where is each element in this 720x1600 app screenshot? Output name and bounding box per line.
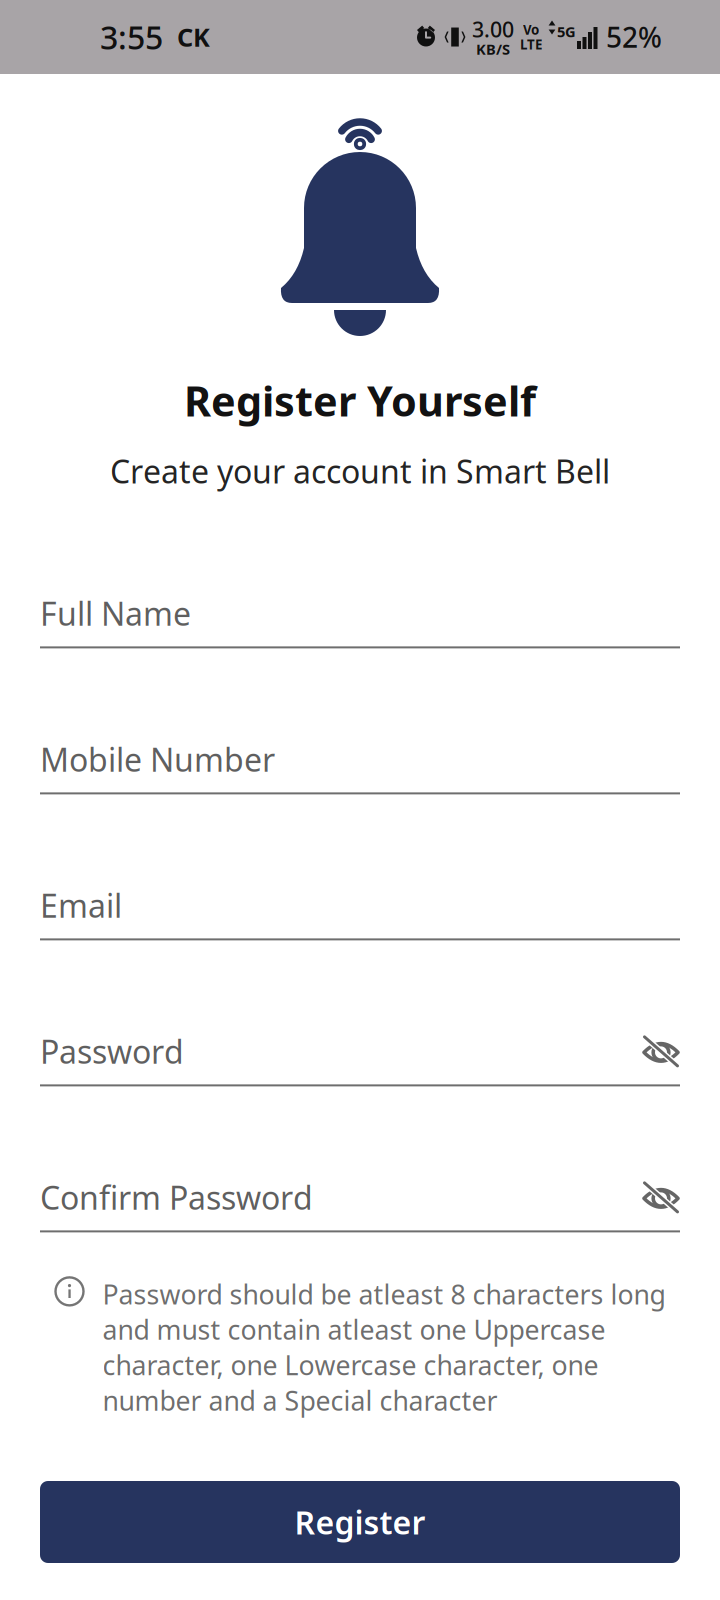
staticText: Email [40, 884, 122, 927]
staticText: 3:55 [100, 16, 163, 58]
staticText: Mobile Number [40, 738, 275, 781]
staticText: Password should be atleast 8 characters … [102, 1276, 665, 1418]
staticText: Full Name [40, 592, 191, 635]
button[interactable]: Show Password [634, 1035, 680, 1067]
staticText: 3.00 [472, 15, 514, 43]
staticText: LTE [520, 35, 542, 53]
staticText: Register [294, 1501, 425, 1543]
staticText: 5G [557, 22, 576, 41]
staticText: Confirm Password [40, 1176, 313, 1219]
staticText: Register Yourself [184, 373, 536, 428]
staticText: Create your account in Smart Bell [110, 450, 610, 492]
staticText: Vo [523, 21, 539, 38]
staticText: Password [40, 1030, 184, 1073]
staticText: KB/S [476, 39, 510, 59]
staticText: CK [177, 20, 210, 54]
button[interactable]: Register [40, 1481, 680, 1563]
button[interactable]: Show Confirm Password [634, 1181, 680, 1213]
staticText: 52% [606, 18, 662, 56]
